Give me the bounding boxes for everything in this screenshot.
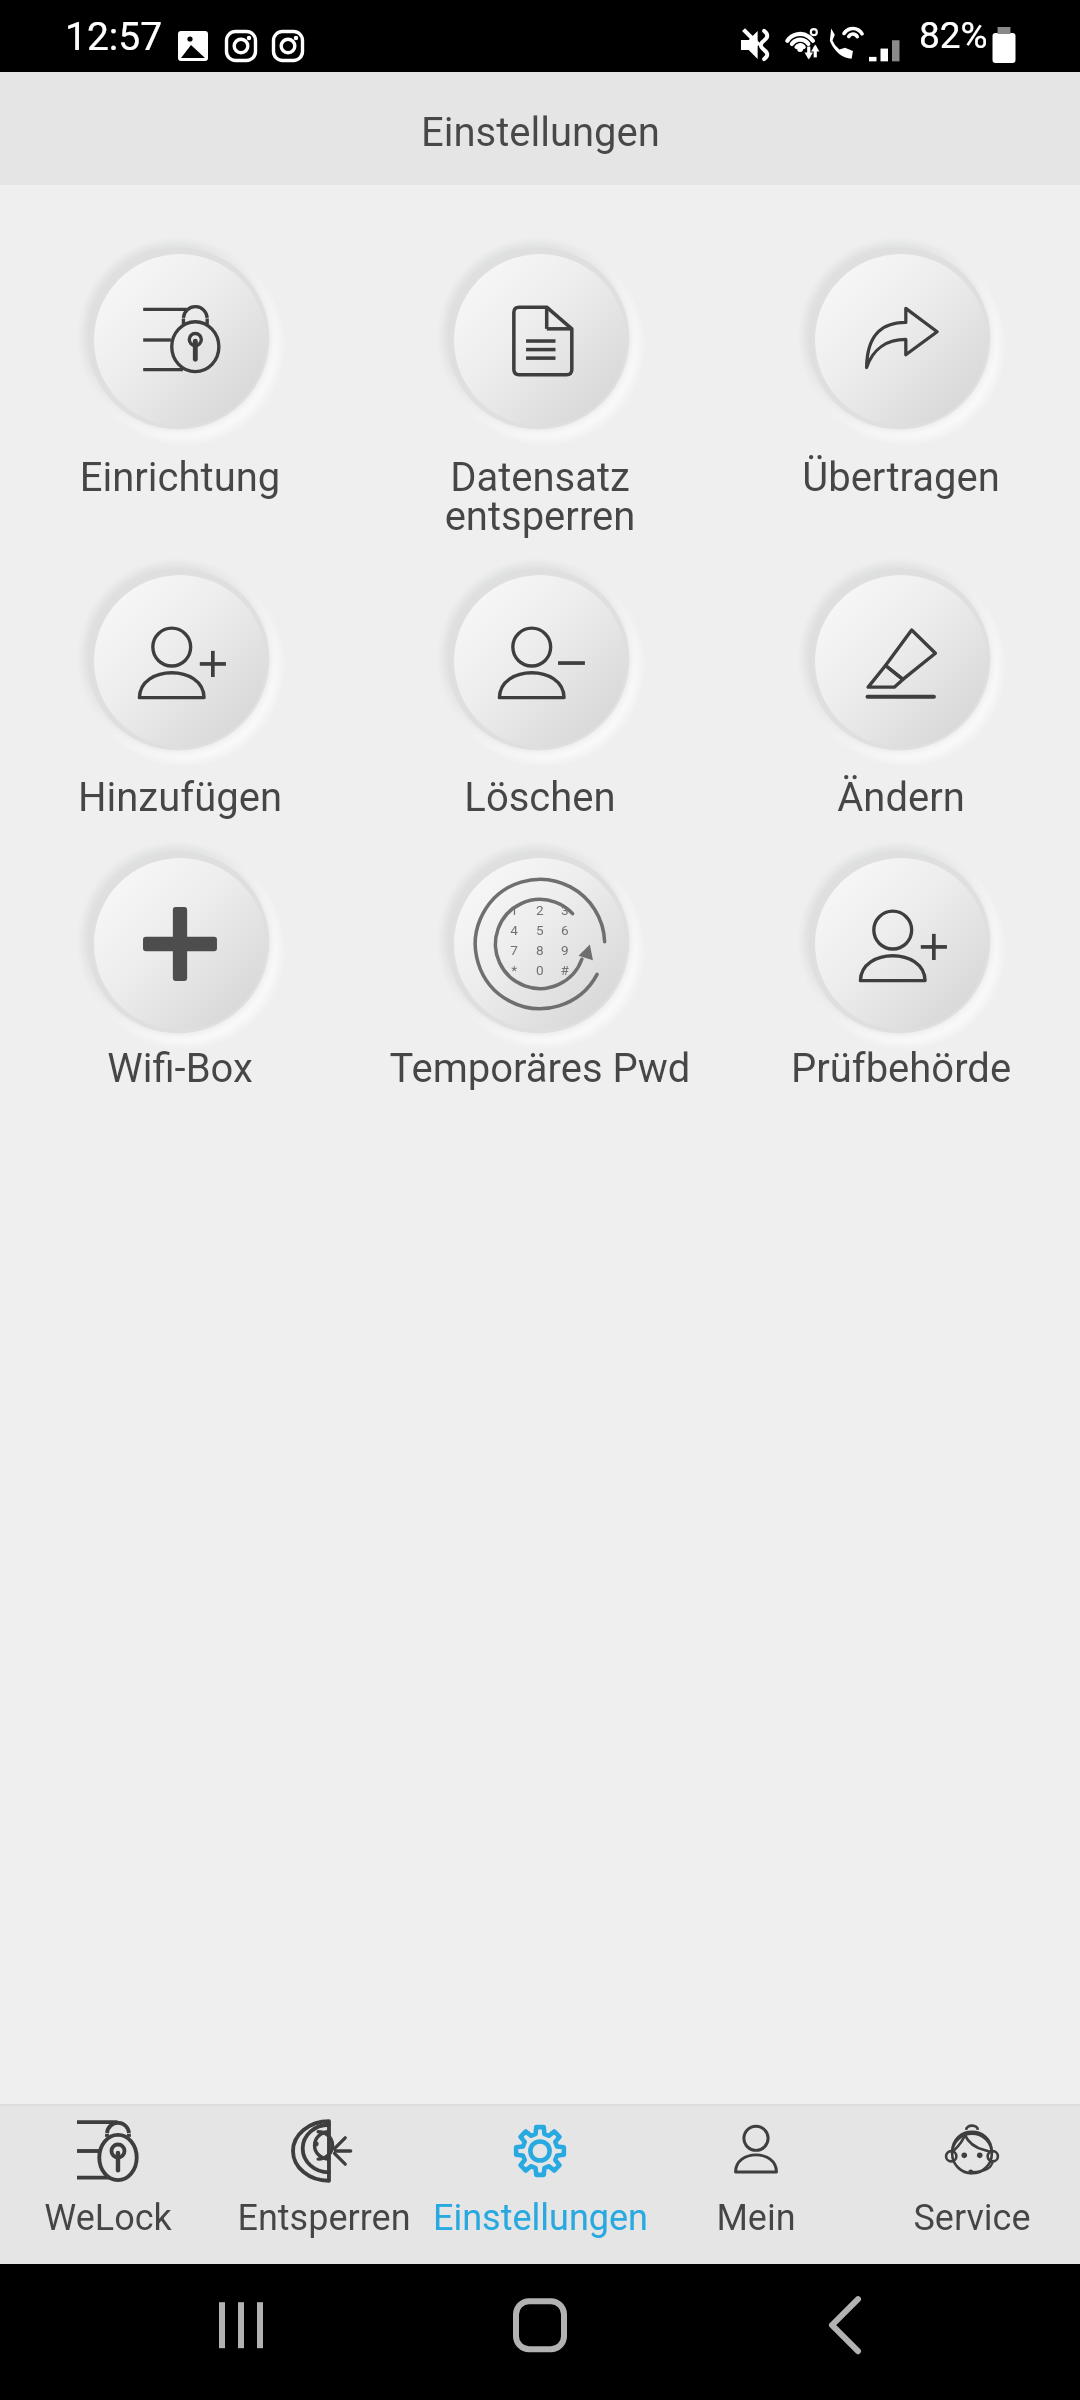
button[interactable]: Einrichtung	[4, 225, 356, 553]
button[interactable]: Prüfbehörde	[725, 829, 1077, 1144]
button[interactable]: WeLock	[0, 2106, 216, 2239]
button[interactable]: Wifi-Box	[4, 829, 356, 1144]
staticText: Temporäres Pwd	[364, 1045, 716, 1092]
button[interactable]: Back	[765, 2264, 925, 2400]
button[interactable]: Einstellungen	[432, 2106, 648, 2239]
staticText: Service	[913, 2197, 1031, 2239]
staticText: Entsperren	[237, 2197, 411, 2239]
button[interactable]: Temporäres Pwd	[364, 829, 716, 1144]
button[interactable]: Home	[460, 2264, 620, 2400]
staticText: Ändern	[725, 774, 1077, 821]
staticText: Einstellungen	[433, 2197, 648, 2239]
button[interactable]: Datensatz entsperren	[364, 225, 716, 553]
staticText: Hinzufügen	[4, 774, 356, 821]
staticText: 12:57	[65, 14, 163, 60]
button[interactable]: Löschen	[364, 546, 716, 873]
button[interactable]: Recent apps	[162, 2264, 322, 2400]
staticText: Einrichtung	[4, 454, 356, 501]
staticText: Mein	[716, 2197, 796, 2239]
button[interactable]: Entsperren	[216, 2106, 432, 2239]
staticText: Prüfbehörde	[725, 1045, 1077, 1092]
button[interactable]: Mein	[648, 2106, 864, 2239]
button[interactable]: Service	[864, 2106, 1080, 2239]
button[interactable]: Ändern	[725, 546, 1077, 873]
button[interactable]: Hinzufügen	[4, 546, 356, 873]
staticText: Löschen	[364, 774, 716, 821]
staticText: Übertragen	[725, 454, 1077, 501]
staticText: 82%	[919, 14, 988, 57]
staticText: Einstellungen	[421, 109, 660, 156]
button[interactable]: Übertragen	[725, 225, 1077, 553]
staticText: WeLock	[44, 2197, 172, 2239]
staticText: Datensatz entsperren	[364, 454, 716, 540]
staticText: Wifi-Box	[4, 1045, 356, 1092]
